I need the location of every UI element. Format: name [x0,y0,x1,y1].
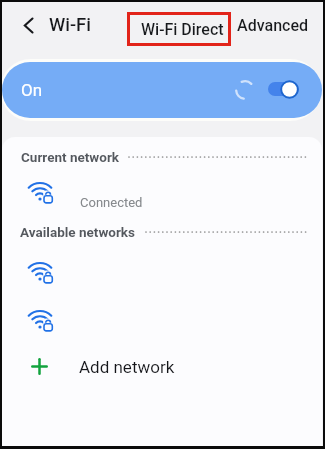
button[interactable] [2,303,322,349]
staticText: Add network [79,357,175,377]
staticText: Available networks [20,224,136,240]
button[interactable]: On [2,62,322,118]
staticText: Advanced [237,16,309,35]
staticText: Current network [21,149,120,165]
staticText: Wi-Fi [49,14,92,34]
staticText: On [21,80,43,100]
button[interactable] [2,350,322,386]
button[interactable] [2,257,322,303]
button[interactable] [13,10,43,40]
button[interactable] [2,178,322,224]
button[interactable]: Advanced [233,9,313,42]
staticText: Wi-Fi Direct [141,20,224,39]
button[interactable]: Wi-Fi Direct [127,12,231,46]
staticText: Connected [80,195,143,210]
